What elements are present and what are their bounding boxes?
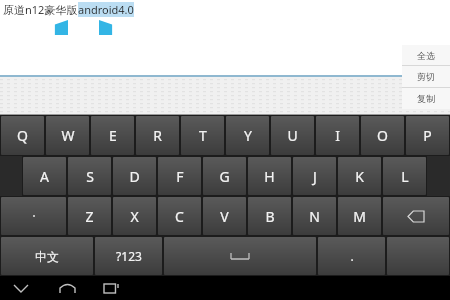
staticText: Q: [17, 126, 28, 145]
button[interactable]: .: [318, 237, 385, 275]
button[interactable]: I: [316, 116, 359, 155]
staticText: T: [199, 126, 207, 145]
staticText: A: [40, 167, 49, 186]
button[interactable]: R: [136, 116, 179, 155]
button[interactable]: 中文: [1, 237, 93, 275]
staticText: R: [153, 126, 162, 145]
button[interactable]: Enter: [387, 237, 449, 275]
button[interactable]: ?123: [95, 237, 162, 275]
button[interactable]: F: [158, 157, 201, 195]
button[interactable]: C: [158, 197, 201, 235]
staticText: M: [353, 207, 366, 226]
staticText: H: [264, 167, 275, 186]
button[interactable]: Home: [56, 277, 78, 299]
staticText: Y: [244, 126, 252, 145]
button[interactable]: Z: [68, 197, 111, 235]
button[interactable]: L: [383, 157, 426, 195]
button[interactable]: W: [46, 116, 89, 155]
staticText: I: [335, 126, 340, 145]
button[interactable]: X: [113, 197, 156, 235]
button[interactable]: Space: [164, 237, 316, 275]
button[interactable]: N: [293, 197, 336, 235]
staticText: C: [175, 207, 184, 226]
staticText: F: [176, 167, 184, 186]
staticText: U: [287, 126, 298, 145]
staticText: W: [61, 126, 75, 145]
button[interactable]: D: [113, 157, 156, 195]
staticText: J: [313, 167, 317, 186]
button[interactable]: Back: [10, 277, 32, 299]
button[interactable]: Backspace: [383, 197, 449, 235]
staticText: 中文: [35, 249, 59, 264]
staticText: android4.0: [78, 2, 134, 17]
button[interactable]: T: [181, 116, 224, 155]
staticText: 全选: [417, 50, 435, 61]
button[interactable]: 全选: [402, 45, 450, 65]
button[interactable]: H: [248, 157, 291, 195]
staticText: G: [219, 167, 230, 186]
button[interactable]: P: [406, 116, 449, 155]
button[interactable]: Recent apps: [100, 277, 122, 299]
staticText: O: [377, 126, 388, 145]
button[interactable]: O: [361, 116, 404, 155]
button[interactable]: Q: [1, 116, 44, 155]
staticText: .: [350, 248, 354, 264]
staticText: L: [401, 167, 409, 186]
staticText: S: [86, 167, 94, 186]
button[interactable]: K: [338, 157, 381, 195]
button[interactable]: 复制: [402, 88, 450, 109]
staticText: V: [220, 207, 229, 226]
staticText: B: [265, 207, 275, 226]
button[interactable]: S: [68, 157, 111, 195]
staticText: E: [109, 126, 117, 145]
button[interactable]: Y: [226, 116, 269, 155]
button[interactable]: J: [293, 157, 336, 195]
button[interactable]: 剪切: [402, 66, 450, 87]
button[interactable]: Selection start: [52, 20, 68, 35]
button[interactable]: E: [91, 116, 134, 155]
button[interactable]: M: [338, 197, 381, 235]
button[interactable]: U: [271, 116, 314, 155]
staticText: K: [355, 167, 364, 186]
button[interactable]: Selection end: [99, 20, 115, 35]
staticText: X: [130, 207, 139, 226]
button[interactable]: B: [248, 197, 291, 235]
staticText: 复制: [417, 93, 435, 104]
button[interactable]: G: [203, 157, 246, 195]
button[interactable]: [1, 197, 66, 235]
button[interactable]: A: [23, 157, 66, 195]
button[interactable]: V: [203, 197, 246, 235]
staticText: D: [129, 167, 140, 186]
staticText: Z: [85, 207, 94, 226]
staticText: 原道n12豪华版: [3, 2, 78, 17]
staticText: ?123: [116, 248, 142, 264]
staticText: 剪切: [417, 71, 435, 82]
staticText: P: [423, 126, 432, 145]
staticText: N: [309, 207, 320, 226]
